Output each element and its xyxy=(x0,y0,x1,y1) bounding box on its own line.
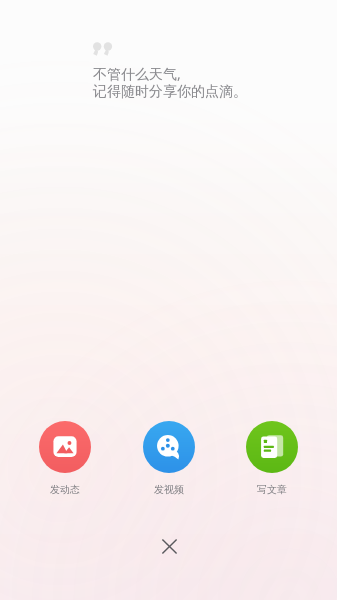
staticText: 发视频 xyxy=(154,483,184,496)
staticText: 发动态 xyxy=(50,483,80,496)
staticText: 写文章 xyxy=(257,483,287,496)
staticText: 记得随时分享你的点滴。 xyxy=(93,83,247,101)
other: 发视频 xyxy=(143,421,195,473)
button[interactable]: 发动态 xyxy=(18,419,112,498)
other: 写文章 xyxy=(246,421,298,473)
other: 发动态 xyxy=(39,421,91,473)
button[interactable]: 关闭 xyxy=(147,524,191,568)
button[interactable]: 写文章 xyxy=(225,419,319,498)
staticText: 不管什么天气, xyxy=(93,64,181,83)
button[interactable]: 发视频 xyxy=(122,419,216,498)
